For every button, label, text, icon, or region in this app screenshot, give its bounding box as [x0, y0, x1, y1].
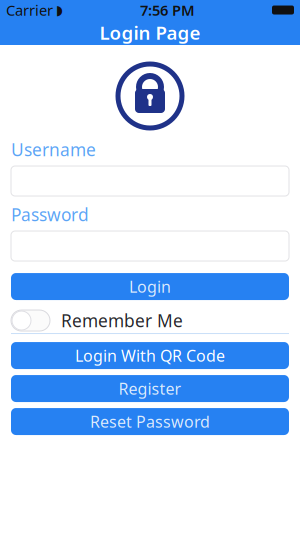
button[interactable]: Login With QR Code	[11, 342, 289, 369]
button[interactable]: Remember Me	[11, 310, 289, 331]
staticText: Reset Password	[90, 411, 210, 432]
staticText: ◗	[56, 2, 63, 17]
staticText: Username	[11, 138, 96, 161]
staticText: Password	[11, 203, 89, 226]
button[interactable]: Reset Password	[11, 408, 289, 435]
button[interactable]: Register	[11, 375, 289, 402]
staticText: Login Page	[99, 20, 200, 45]
staticText: Carrier	[6, 0, 53, 20]
staticText: 7:56 PM	[140, 0, 195, 20]
staticText: Login	[129, 276, 171, 297]
staticText: Remember Me	[61, 309, 183, 332]
staticText: Register	[118, 378, 181, 399]
staticText: Login With QR Code	[75, 345, 225, 366]
button[interactable]: Login	[11, 273, 289, 300]
